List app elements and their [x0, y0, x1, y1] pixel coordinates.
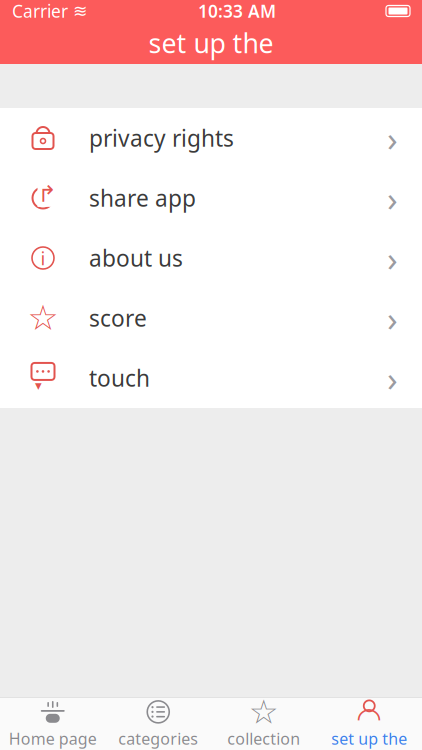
staticText: share app [89, 183, 196, 213]
staticText: ☆ [27, 298, 58, 338]
button[interactable]: i [0, 228, 422, 288]
staticText: › [387, 355, 398, 401]
button[interactable]: ☆ [211, 698, 316, 750]
staticText: i [40, 246, 45, 270]
staticText: › [387, 235, 398, 281]
button[interactable]: ↱ [0, 168, 422, 228]
staticText: score [89, 303, 147, 333]
staticText: categories [118, 728, 198, 749]
staticText: set up the [331, 728, 407, 749]
staticText: collection [227, 728, 300, 749]
staticText: › [387, 115, 398, 161]
button[interactable]: ◠ [316, 698, 422, 750]
button[interactable]: ☆ [0, 288, 422, 348]
button[interactable]: ▾ [0, 348, 422, 408]
staticText: privacy rights [89, 123, 234, 153]
button[interactable]: Home page [0, 698, 105, 750]
staticText: ▾ [35, 378, 42, 393]
staticText: 10:33 AM [198, 0, 276, 22]
staticText: set up the [148, 25, 273, 61]
staticText: ☆ [249, 693, 279, 731]
staticText: › [387, 295, 398, 341]
staticText: touch [89, 363, 150, 393]
staticText: Carrier [12, 0, 68, 22]
staticText: ◠ [356, 701, 382, 734]
button[interactable]: categories [105, 698, 211, 750]
staticText: Home page [9, 728, 97, 749]
staticText: › [387, 175, 398, 221]
staticText: about us [89, 243, 183, 273]
button[interactable]: privacy rights [0, 108, 422, 168]
staticText: ↱ [37, 181, 56, 207]
staticText: ≋ [73, 1, 88, 21]
